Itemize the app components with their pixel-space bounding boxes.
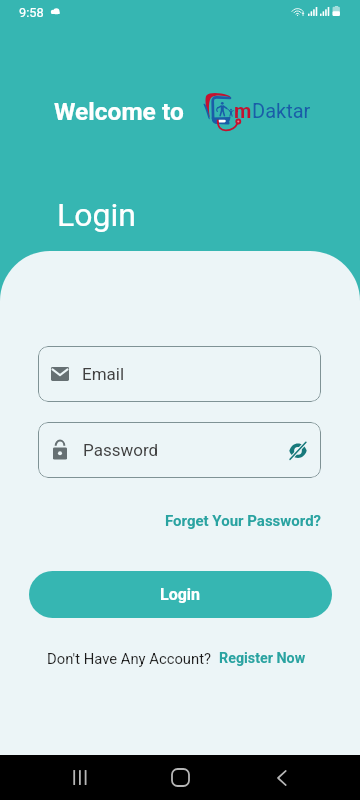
button[interactable]: Register Now	[219, 650, 306, 667]
button[interactable]: Forget Your Password?	[159, 506, 328, 536]
staticText: Login	[57, 196, 136, 234]
staticText: Don't Have Any Account?	[47, 650, 211, 667]
button[interactable]: Recents	[58, 755, 103, 800]
staticText: Daktar	[252, 99, 311, 122]
staticText: m	[234, 99, 252, 122]
staticText: Login	[160, 585, 201, 604]
button[interactable]: Email	[38, 346, 321, 402]
button[interactable]: Home	[158, 755, 203, 800]
button[interactable]: Login	[29, 571, 332, 618]
button[interactable]: Back	[259, 755, 304, 800]
staticText: 9:58	[19, 5, 44, 20]
button[interactable]: Password	[38, 422, 321, 478]
button[interactable]: Show password	[286, 438, 310, 462]
staticText: Forget Your Password?	[165, 512, 322, 530]
staticText: Password	[83, 440, 159, 460]
staticText: Welcome to	[54, 97, 184, 126]
staticText: Email	[82, 364, 125, 384]
staticText: Register Now	[219, 650, 306, 667]
